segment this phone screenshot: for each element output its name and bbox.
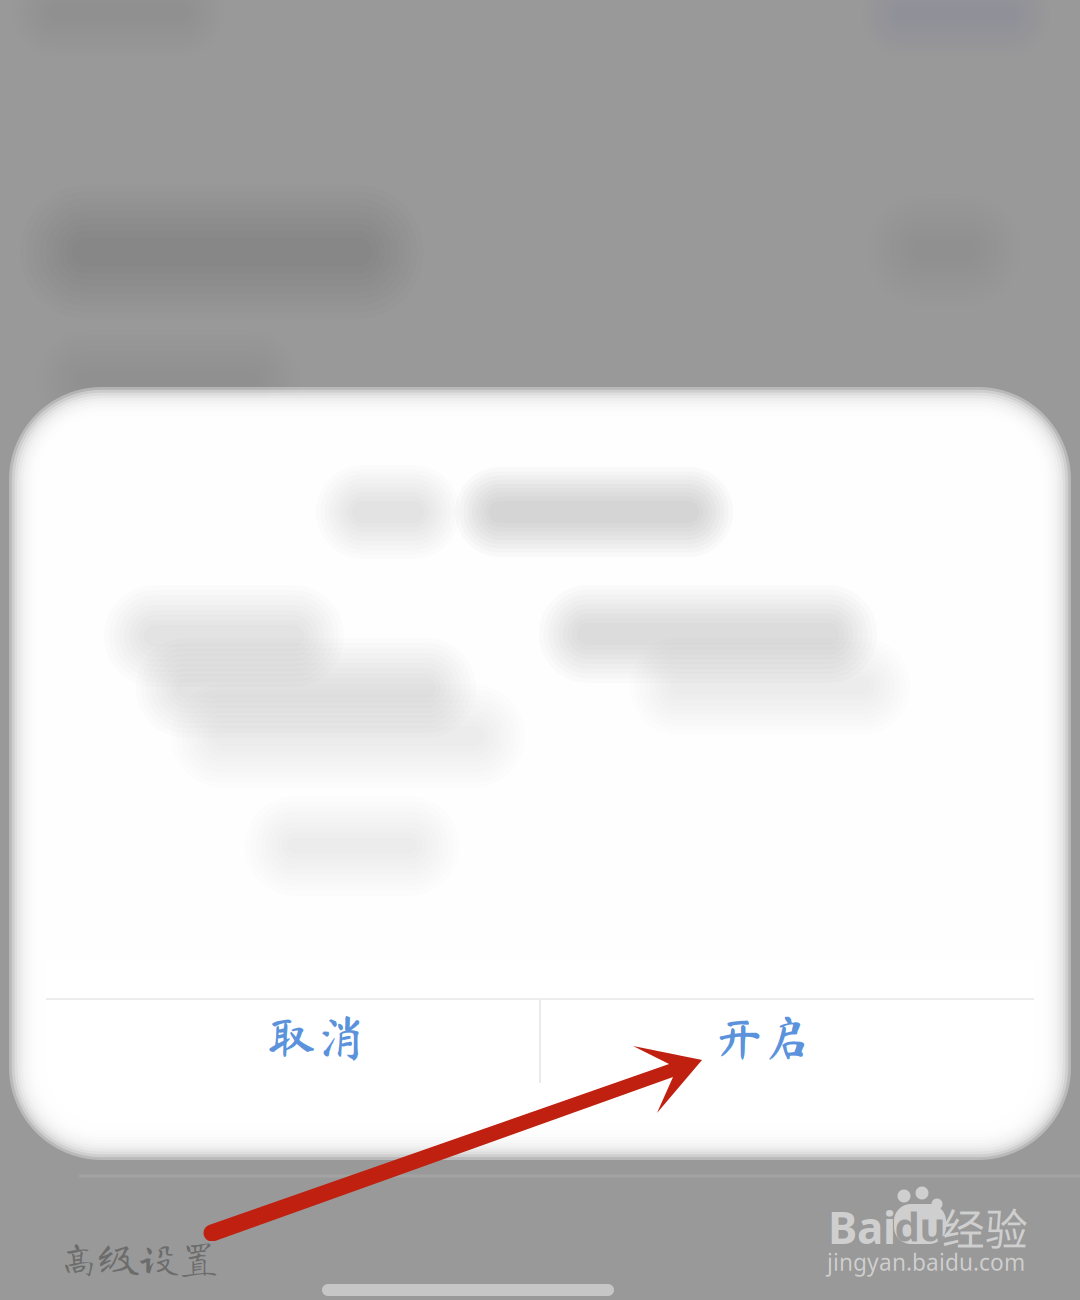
staticText: Bai [828, 1198, 896, 1256]
staticText: 经验 [942, 1196, 1028, 1258]
staticText: 取消 [267, 1012, 365, 1062]
staticText: jingyan.baidu.com [827, 1247, 1025, 1277]
staticText: du [894, 1199, 945, 1252]
staticText: 开启 [713, 1012, 811, 1062]
button[interactable]: 开启 [516, 976, 1008, 1098]
staticText: 高级设置 [59, 1237, 219, 1277]
button[interactable]: 取消 [70, 976, 562, 1098]
